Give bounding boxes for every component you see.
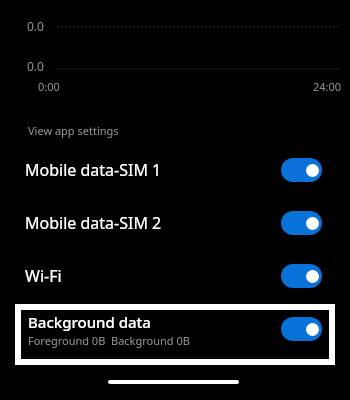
button[interactable]: Toggle mobile data SIM 1 — [281, 158, 322, 182]
button[interactable]: Wi-Fi — [0, 252, 350, 300]
staticText: 0:00 — [38, 79, 60, 94]
button[interactable]: Toggle Wi-Fi — [281, 264, 322, 288]
button[interactable]: Mobile data-SIM 2 — [0, 199, 350, 247]
button[interactable]: Toggle mobile data SIM 2 — [281, 211, 322, 235]
staticText: Wi-Fi — [25, 265, 62, 287]
staticText: Foreground 0B Background 0B — [28, 333, 190, 348]
button[interactable]: Background data — [21, 310, 329, 359]
staticText: Mobile data-SIM 1 — [25, 159, 162, 181]
button[interactable]: Mobile data-SIM 1 — [0, 146, 350, 194]
staticText: 0.0 — [27, 18, 44, 34]
staticText: View app settings — [28, 123, 119, 138]
button[interactable]: Toggle background data — [281, 317, 322, 341]
staticText: Mobile data-SIM 2 — [25, 212, 162, 234]
staticText: 24:00 — [313, 79, 342, 94]
button[interactable]: View app settings — [0, 118, 119, 142]
staticText: 0.0 — [27, 58, 44, 74]
staticText: Background data — [28, 312, 151, 332]
